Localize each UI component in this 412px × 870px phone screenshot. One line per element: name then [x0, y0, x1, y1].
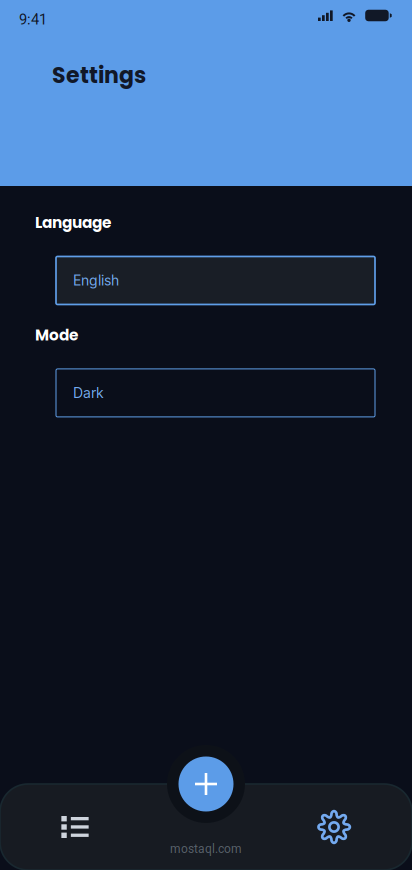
staticText: Dark — [73, 384, 104, 401]
staticText: mostaql.com — [170, 842, 242, 856]
button[interactable]: Dark — [56, 369, 375, 417]
button[interactable]: Settings — [262, 784, 412, 870]
button[interactable]: List — [0, 784, 150, 870]
staticText: Settings — [52, 60, 146, 91]
button[interactable]: English — [56, 256, 375, 304]
staticText: 9:41 — [19, 11, 47, 28]
staticText: English — [73, 272, 119, 289]
button[interactable]: Add — [169, 747, 243, 821]
staticText: Mode — [35, 324, 78, 346]
staticText: Language — [35, 212, 111, 233]
